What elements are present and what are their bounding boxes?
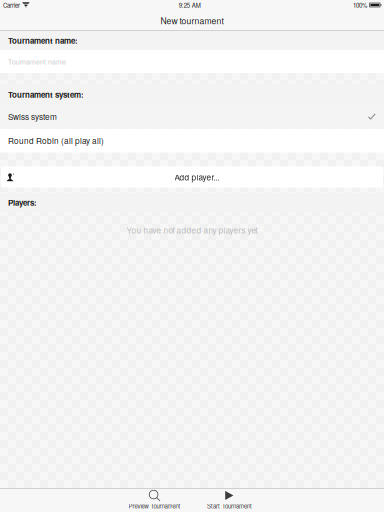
staticText: Add player... (174, 171, 219, 183)
staticText: New tournament (160, 14, 223, 27)
staticText: You have not added any players yet (126, 224, 257, 236)
staticText: Preview Tournament (128, 502, 180, 510)
staticText: Carrier (3, 1, 20, 9)
staticText: Round Robin (all play all) (8, 135, 104, 146)
staticText: Players: (8, 197, 37, 208)
staticText: 100% (353, 1, 367, 9)
staticText: Tournament name: (8, 35, 78, 46)
staticText: Tournament system: (8, 89, 84, 100)
button[interactable]: Start Tournament (193, 490, 265, 510)
staticText: 9:25 AM (179, 1, 201, 9)
button[interactable]: Round Robin (all play all) (0, 128, 384, 152)
staticText: Start Tournament (207, 502, 252, 510)
button[interactable]: Add player... (0, 166, 384, 187)
staticText: Tournament name (8, 57, 66, 66)
button[interactable]: Preview Tournament (115, 490, 193, 510)
staticText: Swiss system (8, 111, 57, 122)
button[interactable]: Swiss system (0, 105, 384, 128)
